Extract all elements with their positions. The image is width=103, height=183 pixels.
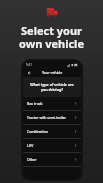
- staticText: 9:41: [26, 63, 32, 67]
- staticText: Other: [27, 157, 37, 162]
- staticText: Select your own vehicle: [19, 23, 84, 51]
- button[interactable]: Back: [25, 69, 32, 76]
- other: Truck: [46, 6, 58, 18]
- button[interactable]: Other: [23, 153, 81, 166]
- staticText: LHV: [27, 143, 34, 148]
- button[interactable]: Box truck: [23, 97, 81, 110]
- button[interactable]: LHV: [23, 139, 81, 152]
- staticText: What type of vehicle are you driving?: [30, 82, 74, 92]
- staticText: Box truck: [27, 101, 43, 106]
- staticText: Tractor with semi-trailer: [27, 115, 66, 120]
- staticText: Combination: [27, 129, 48, 134]
- staticText: Your vehicle: [42, 70, 63, 75]
- button[interactable]: Combination: [23, 125, 81, 138]
- button[interactable]: Tractor with semi-trailer: [23, 111, 81, 124]
